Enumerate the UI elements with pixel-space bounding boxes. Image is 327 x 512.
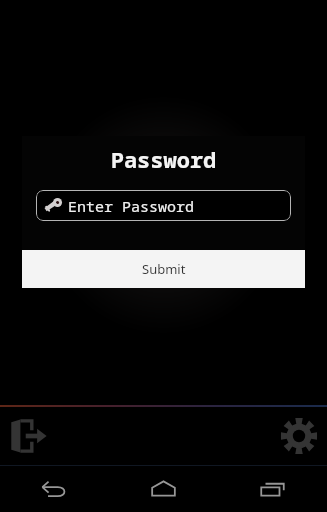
- button[interactable]: Recent apps: [218, 465, 327, 512]
- button[interactable]: Back: [0, 465, 109, 512]
- button[interactable]: Submit: [22, 250, 305, 288]
- button[interactable]: Log out: [2, 410, 54, 462]
- staticText: Password: [22, 144, 305, 174]
- button[interactable]: Settings: [273, 410, 325, 462]
- staticText: Enter Password: [68, 196, 195, 216]
- staticText: Submit: [142, 260, 186, 278]
- button[interactable]: Enter Password: [36, 190, 291, 221]
- button[interactable]: Home: [109, 465, 218, 512]
